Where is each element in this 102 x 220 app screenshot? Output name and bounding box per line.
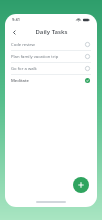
button[interactable]: Go for a walk: [5, 63, 97, 74]
staticText: Code review: [11, 42, 85, 48]
button[interactable]: Plan family vacation trip: [5, 51, 97, 62]
button[interactable]: Code review: [5, 39, 97, 50]
staticText: Meditate: [11, 78, 85, 84]
staticText: 9:41: [12, 17, 20, 22]
button[interactable]: Back: [9, 27, 19, 37]
staticText: Daily Tasks: [35, 28, 68, 36]
staticText: Go for a walk: [11, 66, 85, 72]
staticText: Plan family vacation trip: [11, 54, 85, 60]
button[interactable]: Add task: [73, 177, 89, 193]
button[interactable]: Meditate: [5, 75, 97, 86]
